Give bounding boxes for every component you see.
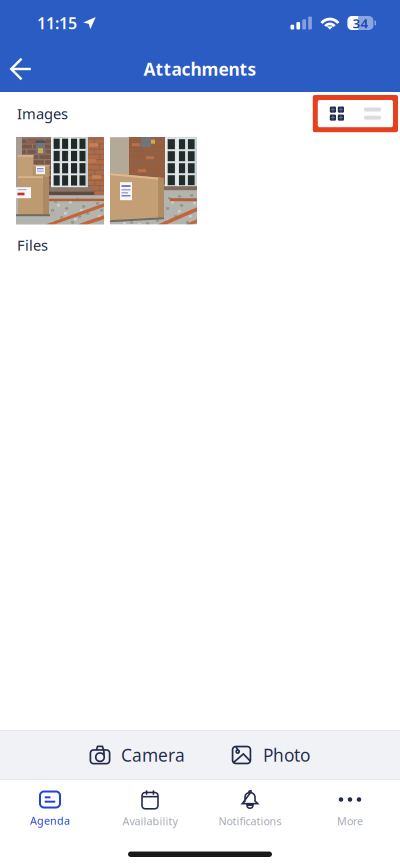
button[interactable]: Agenda (0, 790, 100, 828)
button[interactable]: Back (0, 46, 48, 92)
staticText: Notifications (218, 814, 281, 828)
staticText: Camera (121, 743, 185, 766)
staticText: Availability (122, 814, 177, 828)
staticText: Attachments (143, 57, 256, 80)
staticText: Photo (263, 743, 310, 766)
button[interactable]: Camera (90, 730, 185, 780)
staticText: 11:15 (37, 12, 77, 34)
staticText: 34 (352, 14, 368, 32)
button[interactable]: Availability (100, 790, 200, 828)
button[interactable]: Switch view layout (313, 95, 400, 132)
staticText: More (337, 814, 363, 828)
button[interactable]: Photo (232, 730, 310, 780)
staticText: Images (17, 104, 68, 123)
button[interactable]: Notifications (200, 790, 300, 828)
staticText: Agenda (30, 813, 70, 828)
staticText: Files (17, 235, 48, 255)
button[interactable]: More (300, 790, 400, 828)
